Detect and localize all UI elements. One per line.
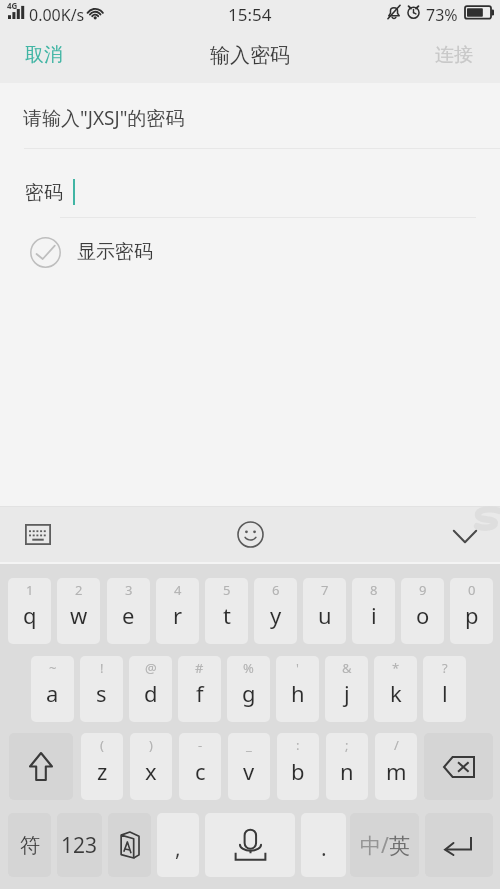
- button[interactable]: Backspace: [424, 733, 493, 800]
- staticText: w: [70, 600, 88, 630]
- button[interactable]: *: [374, 656, 417, 722]
- staticText: a: [46, 678, 59, 708]
- staticText: b: [291, 756, 305, 786]
- staticText: r: [173, 600, 183, 630]
- button[interactable]: 中/: [350, 813, 419, 877]
- staticText: ;: [345, 736, 349, 754]
- button[interactable]: #: [178, 656, 221, 722]
- button[interactable]: /: [375, 733, 417, 800]
- staticText: 123: [61, 831, 98, 860]
- button[interactable]: 显示密码: [0, 225, 500, 279]
- staticText: ~: [49, 659, 57, 677]
- button[interactable]: 123: [57, 813, 102, 877]
- button[interactable]: .: [301, 813, 346, 877]
- staticText: c: [195, 756, 206, 786]
- button[interactable]: _: [228, 733, 270, 800]
- staticText: u: [318, 600, 332, 630]
- button[interactable]: ,: [157, 813, 199, 877]
- button[interactable]: 7: [303, 578, 346, 644]
- button[interactable]: 3: [107, 578, 150, 644]
- button[interactable]: %: [227, 656, 270, 722]
- button[interactable]: 6: [254, 578, 297, 644]
- button[interactable]: ): [130, 733, 172, 800]
- staticText: v: [243, 756, 255, 786]
- staticText: 请输入"JXSJ"的密码: [23, 105, 185, 131]
- button[interactable]: Enter: [425, 813, 493, 877]
- staticText: y: [270, 600, 282, 630]
- staticText: k: [390, 678, 402, 708]
- staticText: t: [223, 600, 231, 630]
- staticText: e: [122, 600, 135, 630]
- staticText: d: [144, 678, 158, 708]
- staticText: 连接: [435, 43, 473, 67]
- staticText: 中/: [360, 831, 389, 860]
- staticText: 8: [370, 581, 378, 599]
- staticText: 1: [26, 581, 34, 599]
- staticText: ,: [175, 834, 181, 863]
- staticText: 密码: [25, 181, 63, 205]
- button[interactable]: 0: [450, 578, 493, 644]
- button[interactable]: -: [179, 733, 221, 800]
- staticText: x: [145, 756, 157, 786]
- button[interactable]: 5: [205, 578, 248, 644]
- staticText: 取消: [25, 43, 63, 67]
- staticText: 4G: [7, 0, 18, 11]
- staticText: s: [96, 678, 107, 708]
- staticText: g: [242, 678, 256, 708]
- staticText: i: [371, 600, 377, 630]
- button[interactable]: :: [277, 733, 319, 800]
- staticText: o: [416, 600, 430, 630]
- button[interactable]: Emoji: [228, 512, 272, 556]
- button[interactable]: Hide keyboard: [443, 514, 487, 558]
- staticText: -: [198, 736, 203, 754]
- staticText: @: [145, 659, 157, 677]
- button[interactable]: 8: [352, 578, 395, 644]
- button[interactable]: Shift: [9, 733, 73, 800]
- staticText: 0.00K/s: [29, 4, 85, 26]
- staticText: #: [195, 659, 204, 677]
- staticText: 2: [75, 581, 83, 599]
- button[interactable]: 符: [8, 813, 51, 877]
- button[interactable]: ': [276, 656, 319, 722]
- button[interactable]: !: [80, 656, 123, 722]
- staticText: 15:54: [228, 3, 272, 26]
- button[interactable]: 连接: [408, 36, 500, 74]
- staticText: %: [243, 659, 254, 677]
- button[interactable]: @: [129, 656, 172, 722]
- button[interactable]: ;: [326, 733, 368, 800]
- staticText: 5: [223, 581, 231, 599]
- staticText: !: [100, 659, 104, 677]
- button[interactable]: ?: [423, 656, 466, 722]
- button[interactable]: Input method: [108, 813, 151, 877]
- staticText: j: [344, 678, 350, 708]
- button[interactable]: 2: [57, 578, 100, 644]
- staticText: &: [342, 659, 352, 677]
- staticText: 英: [389, 833, 410, 859]
- staticText: 4: [174, 581, 182, 599]
- button[interactable]: 1: [8, 578, 51, 644]
- button[interactable]: &: [325, 656, 368, 722]
- button[interactable]: 4: [156, 578, 199, 644]
- staticText: 7: [321, 581, 329, 599]
- staticText: q: [23, 600, 37, 630]
- button[interactable]: 9: [401, 578, 444, 644]
- staticText: ): [149, 736, 153, 754]
- staticText: 符: [20, 833, 40, 858]
- staticText: 73%: [426, 4, 458, 26]
- staticText: f: [196, 678, 204, 708]
- staticText: 9: [419, 581, 427, 599]
- button[interactable]: 取消: [0, 36, 88, 74]
- staticText: 显示密码: [77, 240, 153, 264]
- staticText: z: [97, 756, 108, 786]
- button[interactable]: (: [81, 733, 123, 800]
- staticText: 输入密码: [210, 43, 290, 68]
- button[interactable]: Keyboard layout: [16, 512, 60, 556]
- button[interactable]: Voice input: [205, 813, 295, 877]
- button[interactable]: ~: [31, 656, 74, 722]
- staticText: 3: [125, 581, 133, 599]
- staticText: :: [296, 736, 300, 754]
- staticText: h: [291, 678, 305, 708]
- staticText: *: [392, 659, 400, 677]
- staticText: 6: [272, 581, 280, 599]
- staticText: _: [246, 736, 252, 754]
